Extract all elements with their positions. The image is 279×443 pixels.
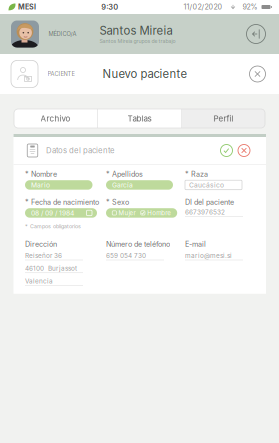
button[interactable]: Cerrar bbox=[249, 65, 266, 82]
button[interactable]: Cancelar bbox=[238, 144, 250, 156]
staticText: 9:30 bbox=[101, 2, 118, 11]
staticText: * Fecha de nacimiento bbox=[25, 198, 99, 206]
staticText: * Nombre bbox=[25, 170, 57, 178]
button[interactable]: Perfil bbox=[182, 109, 265, 128]
staticText: * Sexo bbox=[106, 198, 129, 206]
staticText: Tablas bbox=[127, 114, 151, 123]
staticText: García bbox=[112, 181, 133, 189]
staticText: MÉDICO/A bbox=[48, 30, 76, 37]
staticText: 659 054 730 bbox=[106, 252, 146, 259]
staticText: Dirección bbox=[25, 240, 57, 248]
staticText: 11/02/2020 bbox=[183, 3, 222, 11]
button[interactable]: Cerrar sesión bbox=[246, 24, 266, 44]
staticText: Perfil bbox=[213, 114, 233, 123]
staticText: * Campos obligatorios bbox=[25, 223, 81, 230]
staticText: Mujer bbox=[119, 209, 136, 217]
staticText: DI del paciente bbox=[185, 198, 234, 206]
staticText: MESI bbox=[18, 3, 36, 11]
staticText: PACIENTE bbox=[47, 70, 74, 77]
staticText: Valencia bbox=[25, 277, 53, 285]
staticText: Datos del paciente bbox=[46, 146, 115, 155]
staticText: Caucásico bbox=[189, 181, 224, 189]
staticText: Número de teléfono bbox=[106, 240, 170, 248]
staticText: Archivo bbox=[41, 114, 71, 123]
staticText: Mario bbox=[31, 181, 50, 189]
staticText: E-mail bbox=[185, 240, 206, 248]
button[interactable]: Tablas bbox=[98, 109, 181, 128]
staticText: * Raza bbox=[185, 170, 208, 178]
staticText: Hombre bbox=[147, 209, 171, 217]
staticText: mario@mesi.si bbox=[185, 252, 232, 259]
staticText: 46100 Burjassot bbox=[25, 264, 77, 272]
button[interactable]: Archivo bbox=[14, 109, 97, 128]
staticText: * Apellidos bbox=[106, 170, 143, 178]
staticText: Santos Mireia bbox=[99, 24, 172, 37]
staticText: Santos Mireia grupos de trabajo bbox=[99, 38, 175, 44]
staticText: 92% bbox=[242, 3, 257, 11]
staticText: 08 / 09 / 1984 bbox=[31, 209, 74, 217]
staticText: Nuevo paciente bbox=[102, 67, 187, 81]
button[interactable]: Guardar bbox=[220, 144, 232, 156]
staticText: 6673976532 bbox=[185, 208, 225, 216]
staticText: Reiseñor 36 bbox=[25, 252, 62, 259]
